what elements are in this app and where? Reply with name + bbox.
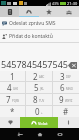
- staticText: #: [63, 106, 69, 117]
- staticText: 3: [60, 71, 65, 81]
- staticText: 8: [33, 94, 38, 105]
- staticText: 43%: [52, 1, 59, 6]
- staticText: 5: [34, 82, 39, 93]
- staticText: *: [10, 106, 15, 117]
- button[interactable]: 8: [26, 94, 52, 105]
- button[interactable]: 2: [26, 71, 52, 81]
- staticText: 1: [10, 71, 15, 81]
- staticText: 21:30: [67, 1, 78, 6]
- button[interactable]: Voicemail: [0, 117, 20, 128]
- staticText: Odeslat zprávu SMS: [9, 20, 56, 27]
- staticText: 5457845457545: [1, 58, 68, 70]
- button[interactable]: Recents: [50, 128, 70, 140]
- button[interactable]: Backspace: [68, 62, 77, 69]
- button[interactable]: Přidat do kontaktů: [0, 30, 79, 42]
- staticText: 9: [59, 94, 64, 105]
- button[interactable]: Contacts: [59, 6, 79, 17]
- staticText: 6: [60, 82, 65, 93]
- button[interactable]: 0: [26, 106, 52, 117]
- staticText: Volat: [38, 121, 48, 126]
- staticText: ABC: [39, 75, 45, 79]
- button[interactable]: Home: [30, 128, 50, 140]
- staticText: DEF: [66, 75, 72, 79]
- staticText: 0: [35, 106, 40, 117]
- staticText: GHI: [13, 87, 19, 91]
- button[interactable]: 4: [0, 82, 25, 93]
- button[interactable]: Back: [10, 128, 30, 140]
- staticText: 2: [33, 71, 38, 81]
- button[interactable]: #: [53, 106, 79, 117]
- button[interactable]: 7: [0, 94, 25, 105]
- button[interactable]: 6: [53, 82, 79, 93]
- staticText: 7: [6, 94, 11, 105]
- button[interactable]: 9: [53, 94, 79, 105]
- button[interactable]: Keypad: [0, 6, 19, 17]
- button[interactable]: Odeslat zprávu SMS: [0, 17, 79, 29]
- button[interactable]: 3: [53, 71, 79, 81]
- staticText: WXYZ: [65, 99, 73, 103]
- button[interactable]: *: [0, 106, 25, 117]
- button[interactable]: Volat: [20, 117, 58, 128]
- staticText: TUV: [39, 99, 45, 103]
- staticText: 4: [7, 82, 12, 93]
- button[interactable]: 5: [26, 82, 52, 93]
- button[interactable]: More options: [58, 117, 79, 128]
- staticText: +: [41, 111, 43, 115]
- staticText: MNO: [66, 87, 73, 91]
- staticText: JKL: [40, 87, 44, 91]
- button[interactable]: 1: [0, 71, 25, 81]
- staticText: Přidat do kontaktů: [9, 33, 53, 40]
- staticText: PQRS: [12, 99, 20, 103]
- button[interactable]: Favorites: [39, 6, 59, 17]
- button[interactable]: Call log: [19, 6, 39, 17]
